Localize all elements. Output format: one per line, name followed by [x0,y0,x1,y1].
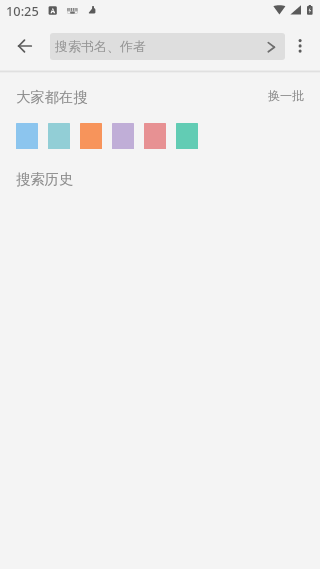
staticText: 10:25 [6,2,39,19]
staticText: 搜索书名、作者 [55,38,146,54]
button[interactable]: More options [280,26,320,66]
button[interactable]: 搜索书名、作者 [50,33,285,60]
button[interactable]: Back [5,26,45,66]
button[interactable]: 搜索历史 [16,170,74,188]
button[interactable]: Search [259,34,285,60]
staticText: 搜索历史 [16,170,74,188]
button[interactable]: 换一批 [268,88,304,103]
button[interactable]: 大家都在搜 [16,88,88,106]
staticText: 大家都在搜 [16,88,88,106]
staticText: 换一批 [268,88,304,103]
